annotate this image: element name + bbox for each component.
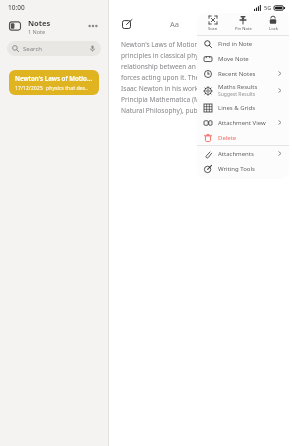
button[interactable]: Search [7,41,101,56]
staticText: Suggest Results [218,91,256,98]
staticText: Newton's Laws of Motio.... [15,74,93,82]
button[interactable]: Scan [199,13,227,35]
button[interactable]: Writing Tools [197,161,289,176]
button[interactable]: Checklist [196,16,212,32]
staticText: Maths Results [218,83,258,91]
staticText: 17/12/2025 [15,84,43,91]
staticText: Aa [170,19,179,29]
staticText: physics that des.. [46,84,88,91]
button[interactable]: Toggle sidebar [7,18,23,34]
button[interactable]: Recent Notes [197,66,289,81]
staticText: relationship between an o [121,62,202,71]
staticText: principles in classical phys [121,51,202,60]
staticText: Principia Mathematica (M [121,95,200,104]
staticText: 5G [264,4,272,11]
staticText: Isaac Newton in his work [121,84,200,93]
staticText: forces acting upon it. The [121,73,200,82]
staticText: Newton's Laws of Motion [121,40,199,49]
staticText: Natural Philosophy), publ [121,106,200,115]
staticText: Find in Note [218,40,253,48]
button[interactable]: Maths Results [197,81,289,100]
button[interactable]: Lock [259,13,287,35]
staticText: Attachments [218,150,254,158]
staticText: Attachment View [218,119,266,127]
button[interactable]: Compose new note [119,16,135,32]
staticText: Recent Notes [218,70,256,78]
staticText: Delete [218,134,237,142]
button[interactable]: More options [85,18,101,34]
button[interactable]: Pin Note [229,13,257,35]
staticText: Lines & Grids [218,104,256,112]
button[interactable]: Text format [166,16,182,32]
button[interactable]: Move Note [197,51,289,66]
staticText: 10:00 [8,3,25,12]
button[interactable]: Attachments [197,146,289,161]
button[interactable]: Find in Note [197,36,289,51]
staticText: Notes [28,18,51,28]
button[interactable]: Attachment View [197,115,289,130]
staticText: Scan [208,26,218,32]
staticText: 1 Note [28,28,46,35]
button[interactable]: Newton's Laws of Motio.... [9,70,99,95]
staticText: Move Note [218,55,249,63]
button[interactable]: Lines & Grids [197,100,289,115]
staticText: Pin Note [235,26,252,32]
staticText: Lock [269,26,278,32]
staticText: Writing Tools [218,165,255,173]
staticText: Search [23,45,42,53]
button[interactable]: Delete [197,130,289,145]
